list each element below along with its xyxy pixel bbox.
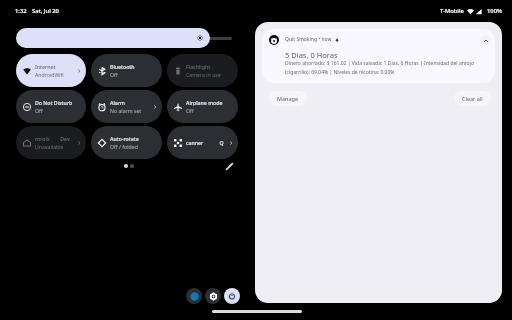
staticText: Airplane mode: [186, 99, 223, 106]
staticText: 1:32: [15, 7, 27, 15]
staticText: Auto-rotate: [110, 135, 139, 142]
button[interactable]: Bluetooth: [91, 54, 162, 87]
button[interactable]: User: [186, 288, 202, 304]
staticText: Internet: [35, 63, 56, 70]
staticText: Off: [35, 107, 43, 114]
button[interactable]: Internet: [16, 54, 86, 87]
staticText: Dinero ahorrado: $ 161.02 | Vida salvada…: [285, 60, 492, 76]
staticText: Bluetooth: [110, 63, 135, 70]
staticText: Manage: [277, 95, 299, 102]
staticText: ntrols Dev: [35, 135, 70, 142]
staticText: Sat, Jul 20: [32, 7, 59, 15]
button[interactable]: canner Q: [167, 126, 238, 159]
staticText: AndroidWifi: [35, 71, 64, 78]
staticText: Alarm: [110, 99, 125, 106]
staticText: Camera in use: [186, 71, 221, 78]
staticText: T-Mobile: [440, 7, 464, 15]
staticText: 5 Dias, 0 Horas: [285, 50, 338, 60]
staticText: Flashlight: [186, 63, 211, 70]
button[interactable]: Brightness: [16, 28, 210, 48]
button[interactable]: ntrols Dev: [16, 126, 86, 159]
button[interactable]: Clear all: [454, 91, 491, 106]
staticText: Quit Smoking • now: [285, 36, 332, 43]
staticText: Off / folded: [110, 143, 138, 150]
staticText: No alarm set: [110, 107, 142, 114]
staticText: Unavailable: [35, 143, 64, 150]
staticText: Do Not Disturb: [35, 99, 73, 106]
staticText: Off: [110, 71, 118, 78]
staticText: 100%: [487, 7, 502, 15]
button[interactable]: Quit Smoking • now: [262, 29, 495, 83]
button[interactable]: Edit tiles: [222, 159, 237, 174]
button[interactable]: Alarm: [91, 90, 162, 123]
button[interactable]: Collapse notification: [480, 35, 491, 46]
staticText: Clear all: [462, 95, 483, 102]
staticText: Off: [186, 107, 194, 114]
button[interactable]: Airplane mode: [167, 90, 238, 123]
button[interactable]: Flashlight: [167, 54, 238, 87]
button[interactable]: Do Not Disturb: [16, 90, 86, 123]
button[interactable]: Manage: [269, 91, 307, 106]
staticText: canner Q: [186, 139, 224, 146]
button[interactable]: Settings: [205, 288, 221, 304]
button[interactable]: Power: [224, 288, 240, 304]
button[interactable]: Auto-rotate: [91, 126, 162, 159]
